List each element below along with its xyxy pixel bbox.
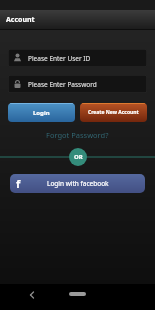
button[interactable]: f xyxy=(10,174,145,193)
staticText: Login with facebook xyxy=(47,179,109,188)
staticText: Account xyxy=(6,15,35,25)
staticText: Please Enter User ID xyxy=(28,54,91,63)
button[interactable] xyxy=(24,287,40,303)
button[interactable]: Forgot Password? xyxy=(46,130,109,140)
button[interactable]: Create New Account xyxy=(80,103,147,122)
button[interactable] xyxy=(69,292,86,296)
staticText: Create New Account xyxy=(88,109,139,116)
button[interactable]: Login xyxy=(8,103,75,122)
staticText: OR xyxy=(74,153,83,161)
button[interactable]: Please Enter User ID xyxy=(8,49,147,67)
staticText: f xyxy=(16,176,21,191)
staticText: Login xyxy=(33,109,50,117)
button[interactable]: Please Enter Password xyxy=(8,75,147,93)
staticText: Please Enter Password xyxy=(28,80,97,89)
